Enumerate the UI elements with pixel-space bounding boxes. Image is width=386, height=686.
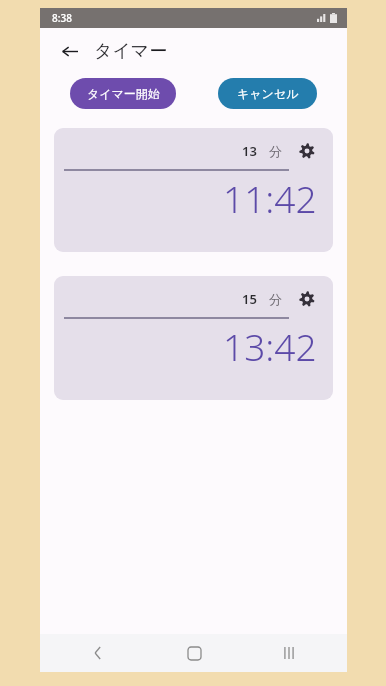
button[interactable]: Home [178,637,210,669]
button[interactable]: Settings [296,140,318,162]
staticText: 8:38 [52,11,72,25]
staticText: 11:42 [223,173,317,223]
button[interactable]: キャンセル [218,78,317,109]
staticText: 分 [269,143,282,159]
staticText: 15 [242,290,257,308]
staticText: 分 [269,291,282,307]
button[interactable]: 13 [54,128,333,252]
staticText: キャンセル [237,86,299,101]
button[interactable]: Recent apps [273,637,305,669]
button[interactable]: Back [82,637,114,669]
button[interactable]: Back [56,38,82,64]
button[interactable]: 15 [54,276,333,400]
staticText: 13:42 [223,321,317,371]
staticText: 13 [242,142,257,160]
button[interactable]: Settings [296,288,318,310]
staticText: タイマー開始 [87,86,160,101]
button[interactable]: タイマー開始 [70,78,176,109]
staticText: タイマー [94,40,168,63]
